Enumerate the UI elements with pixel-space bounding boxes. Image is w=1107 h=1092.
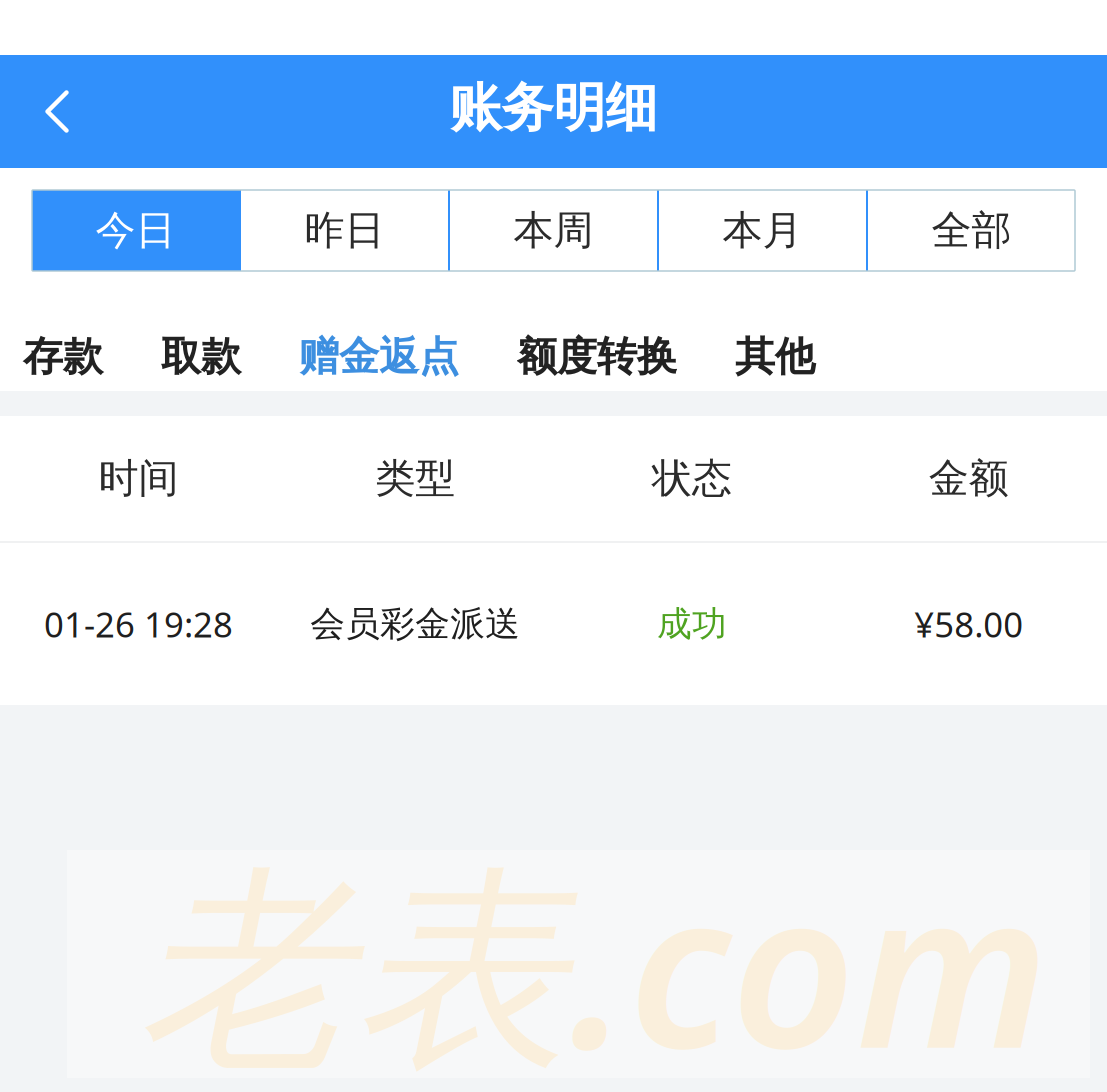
button[interactable]: 本月: [659, 190, 866, 271]
staticText: 本周: [513, 206, 593, 255]
staticText: 存款: [23, 332, 103, 381]
button[interactable]: 取款: [161, 332, 241, 381]
button[interactable]: 存款: [23, 332, 103, 381]
staticText: 类型: [375, 454, 455, 503]
button[interactable]: 额度转换: [517, 332, 677, 381]
staticText: ¥58.00: [914, 601, 1023, 647]
staticText: 老表.com: [138, 821, 1049, 1092]
staticText: 其他: [735, 332, 815, 381]
button[interactable]: 本周: [450, 190, 657, 271]
staticText: 时间: [98, 454, 178, 503]
button[interactable]: 其他: [735, 332, 815, 381]
button[interactable]: 今日: [32, 190, 239, 271]
button[interactable]: Back: [24, 59, 90, 163]
staticText: 昨日: [304, 206, 384, 255]
staticText: 赠金返点: [299, 332, 459, 381]
staticText: 成功: [657, 603, 727, 645]
button[interactable]: 赠金返点: [299, 332, 459, 381]
staticText: 金额: [929, 454, 1009, 503]
staticText: 取款: [161, 332, 241, 381]
staticText: 今日: [95, 206, 175, 255]
staticText: 全部: [931, 206, 1011, 255]
staticText: 01-26 19:28: [44, 601, 233, 647]
staticText: 会员彩金派送: [310, 603, 520, 645]
staticText: 额度转换: [517, 332, 677, 381]
button[interactable]: 01-26 19:28: [0, 543, 1107, 705]
staticText: 账务明细: [449, 76, 657, 140]
button[interactable]: 全部: [868, 190, 1075, 271]
staticText: 本月: [722, 206, 802, 255]
button[interactable]: 昨日: [241, 190, 448, 271]
staticText: 状态: [652, 454, 732, 503]
